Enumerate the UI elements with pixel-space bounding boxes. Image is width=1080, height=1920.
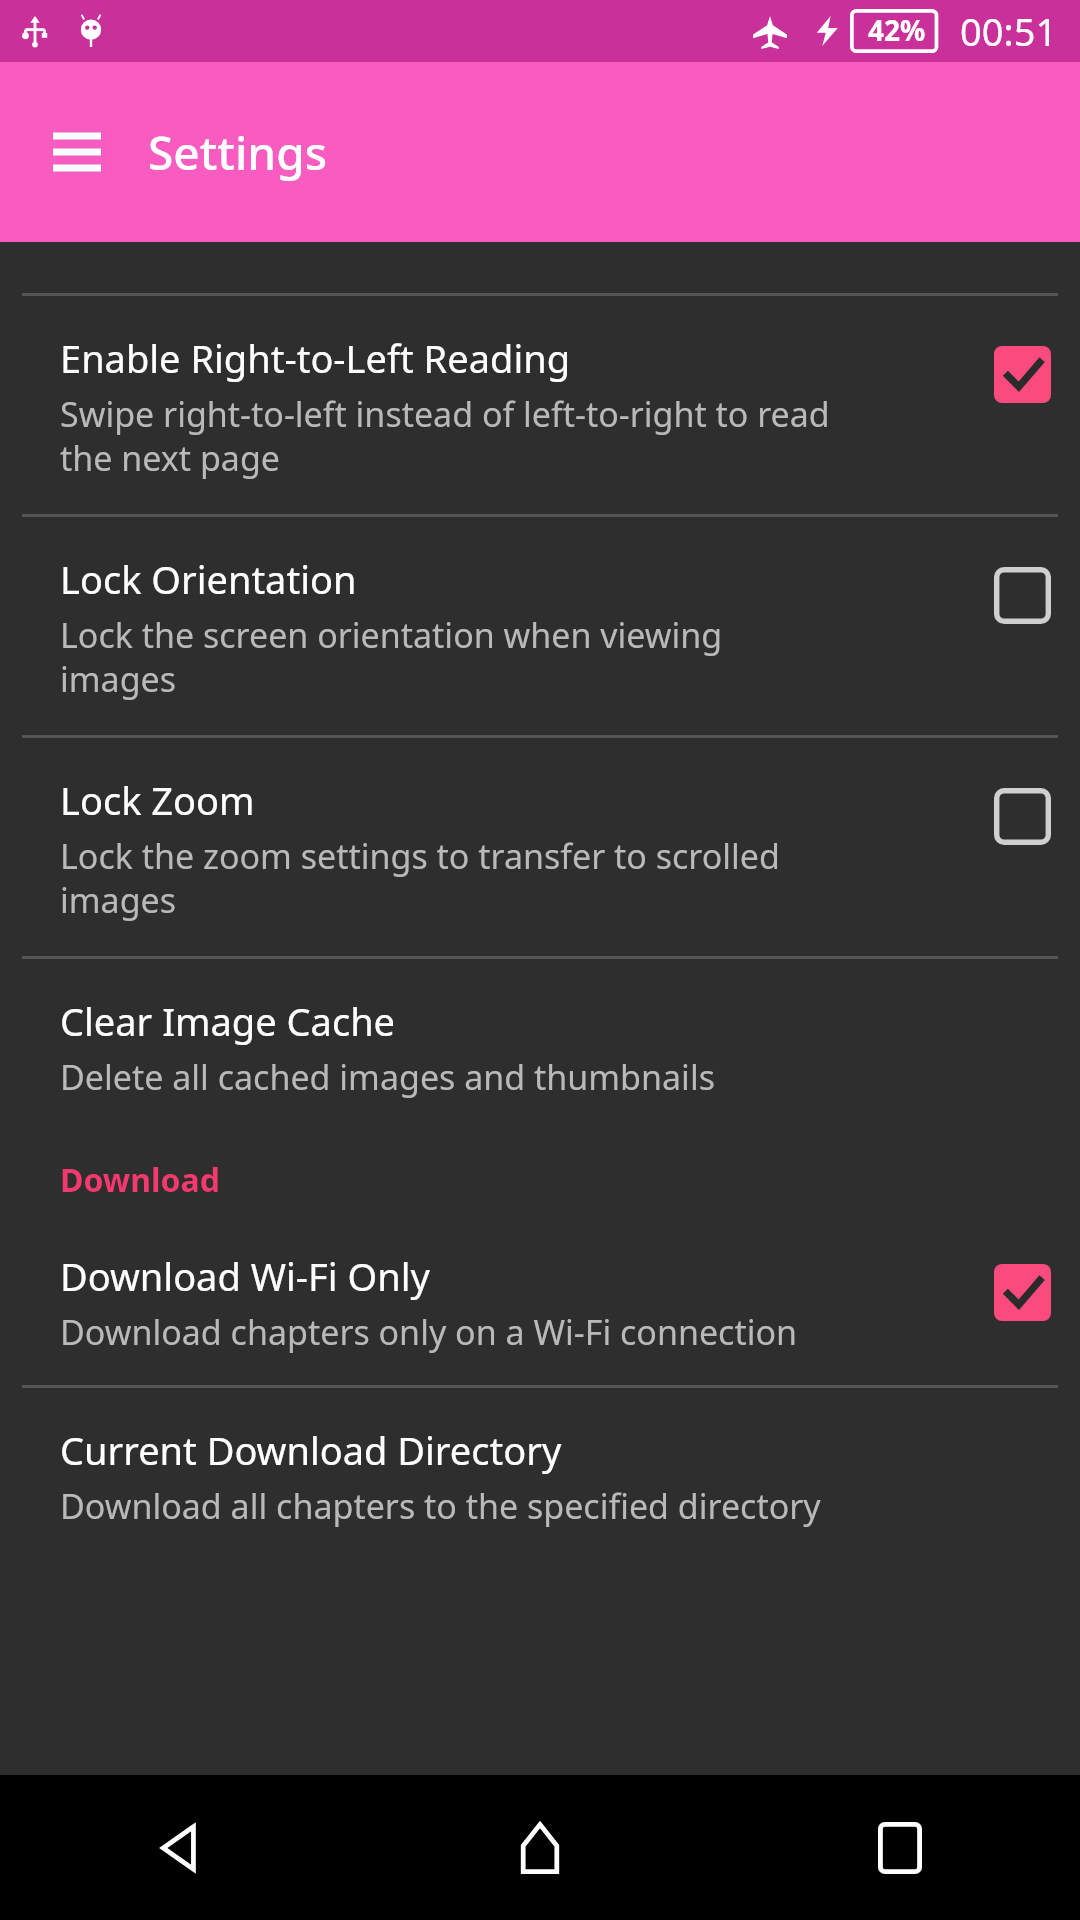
button[interactable]: Download Wi-Fi Only: [0, 1220, 1080, 1385]
staticText: Clear Image Cache: [60, 995, 396, 1047]
button[interactable]: Open navigation drawer: [46, 121, 108, 183]
button[interactable]: Enabled: [990, 342, 1054, 406]
staticText: Download Wi-Fi Only: [60, 1250, 430, 1302]
staticText: Lock Zoom: [60, 774, 255, 826]
staticText: Lock Orientation: [60, 553, 357, 605]
button[interactable]: Lock Zoom: [0, 738, 1080, 956]
staticText: Enable Right-to-Left Reading: [60, 332, 571, 384]
staticText: Download chapters only on a Wi-Fi connec…: [60, 1309, 798, 1355]
button[interactable]: Back: [0, 1775, 360, 1920]
staticText: Delete all cached images and thumbnails: [60, 1054, 715, 1100]
button[interactable]: Disabled: [990, 784, 1054, 848]
staticText: Current Download Directory: [60, 1424, 562, 1476]
staticText: Lock the zoom settings to transfer to sc…: [60, 833, 780, 923]
staticText: Settings: [148, 121, 328, 184]
button[interactable]: Enable Right-to-Left Reading: [0, 296, 1080, 514]
button[interactable]: Enabled: [990, 1260, 1054, 1324]
button[interactable]: Disabled: [990, 563, 1054, 627]
staticText: Download all chapters to the specified d…: [60, 1483, 821, 1529]
button[interactable]: Lock Orientation: [0, 517, 1080, 735]
button[interactable]: Current Download Directory: [0, 1388, 1080, 1559]
button[interactable]: Recent apps: [720, 1775, 1080, 1920]
staticText: Lock the screen orientation when viewing…: [60, 612, 723, 702]
staticText: Swipe right-to-left instead of left-to-r…: [60, 391, 830, 481]
button[interactable]: Home: [360, 1775, 720, 1920]
staticText: Download: [60, 1158, 220, 1202]
staticText: 42%: [868, 11, 926, 49]
staticText: 00:51: [960, 5, 1058, 57]
button[interactable]: Clear Image Cache: [0, 959, 1080, 1130]
